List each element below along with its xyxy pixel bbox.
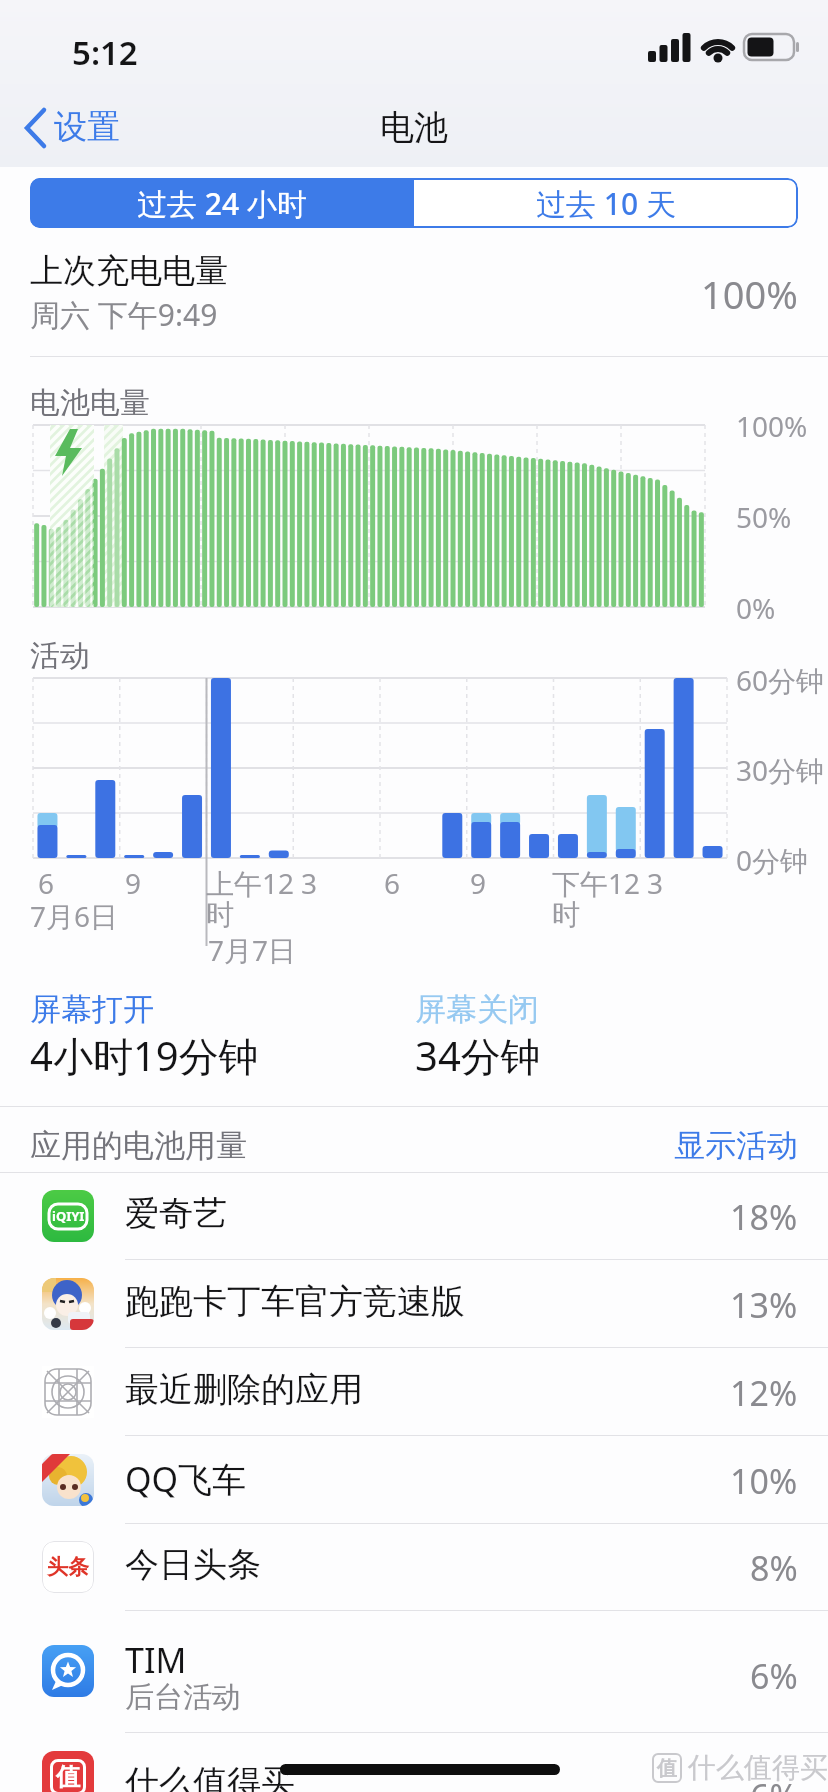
button[interactable]: 显示活动	[674, 1126, 798, 1165]
button[interactable]: 跑跑卡丁车官方竞速版	[0, 1260, 828, 1348]
staticText: 时	[206, 897, 234, 932]
button[interactable]: iQIYI	[0, 1172, 828, 1260]
staticText: 4小时19分钟	[30, 1028, 259, 1083]
staticText: 今日头条	[125, 1543, 261, 1586]
staticText: 0%	[736, 589, 776, 627]
staticText: 活动	[30, 637, 90, 675]
staticText: 电池电量	[30, 384, 150, 422]
staticText: 7月6日	[30, 897, 119, 935]
staticText: 什么值得买	[125, 1761, 295, 1792]
staticText: 过去 10 天	[536, 183, 676, 224]
button[interactable]: 设置	[18, 100, 158, 156]
staticText: 头条	[47, 1554, 89, 1580]
staticText: 0分钟	[736, 841, 809, 879]
staticText: 电池	[380, 106, 448, 149]
staticText: 9	[125, 864, 142, 902]
staticText: 60分钟	[736, 661, 825, 699]
staticText: 30分钟	[736, 751, 825, 789]
staticText: 6%	[750, 1653, 798, 1699]
button[interactable]: 值	[0, 1733, 828, 1792]
staticText: 上午12	[206, 864, 295, 902]
staticText: QQ飞车	[125, 1456, 247, 1502]
staticText: iQIYI	[52, 1207, 85, 1225]
staticText: 6%	[750, 1773, 798, 1792]
staticText: 跑跑卡丁车官方竞速版	[125, 1280, 465, 1323]
button[interactable]: QQ飞车	[0, 1436, 828, 1524]
staticText: 34分钟	[415, 1028, 541, 1083]
staticText: 后台活动	[125, 1679, 241, 1716]
staticText: 8%	[750, 1545, 798, 1591]
staticText: 100%	[701, 268, 798, 320]
staticText: 9	[470, 864, 487, 902]
staticText: 6	[384, 864, 401, 902]
button[interactable]: 过去 10 天	[414, 178, 798, 228]
staticText: 什么值得买	[688, 1750, 828, 1785]
staticText: 爱奇艺	[125, 1192, 227, 1235]
staticText: TIM	[125, 1637, 187, 1683]
staticText: 上次充电电量	[30, 250, 228, 292]
staticText: 周六 下午9:49	[30, 294, 218, 335]
staticText: 5:12	[72, 30, 138, 75]
button[interactable]: TIM	[0, 1611, 828, 1733]
staticText: 12%	[730, 1370, 798, 1416]
staticText: 应用的电池用量	[30, 1126, 247, 1165]
staticText: 过去 24 小时	[137, 183, 307, 224]
button[interactable]: 头条	[0, 1524, 828, 1611]
staticText: 3	[301, 864, 318, 902]
staticText: 100%	[736, 407, 808, 445]
staticText: 13%	[730, 1282, 798, 1328]
button[interactable]: 过去 24 小时	[30, 178, 414, 228]
staticText: 6	[38, 864, 55, 902]
button[interactable]: 最近删除的应用	[0, 1348, 828, 1436]
staticText: 50%	[736, 498, 792, 536]
staticText: 屏幕打开	[30, 990, 154, 1029]
staticText: 值	[657, 1756, 677, 1781]
staticText: 下午12	[552, 864, 641, 902]
staticText: 设置	[54, 106, 120, 148]
staticText: 值	[56, 1762, 80, 1792]
staticText: 18%	[730, 1194, 798, 1240]
staticText: 最近删除的应用	[125, 1368, 363, 1411]
staticText: 时	[552, 897, 580, 932]
staticText: 10%	[730, 1458, 798, 1504]
staticText: 7月7日	[208, 931, 297, 969]
staticText: 屏幕关闭	[415, 990, 539, 1029]
staticText: 3	[647, 864, 664, 902]
